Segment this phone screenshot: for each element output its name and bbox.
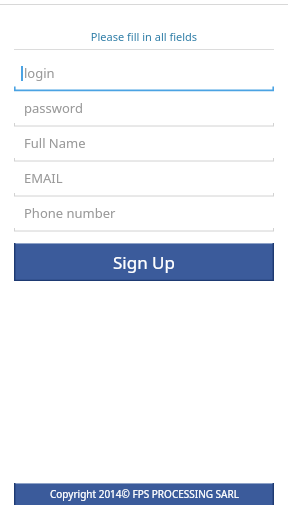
button[interactable]: password bbox=[14, 93, 274, 127]
staticText: password bbox=[24, 99, 83, 117]
staticText: Sign Up bbox=[113, 251, 175, 274]
button[interactable]: login bbox=[14, 58, 274, 92]
staticText: Copyright 2014© FPS PROCESSING SARL bbox=[50, 487, 239, 501]
staticText: login bbox=[24, 64, 55, 82]
button[interactable]: Copyright 2014© FPS PROCESSING SARL bbox=[14, 483, 274, 505]
staticText: EMAIL bbox=[24, 169, 63, 187]
staticText: Full Name bbox=[24, 134, 86, 152]
staticText: Phone number bbox=[24, 204, 116, 222]
button[interactable]: Sign Up bbox=[14, 243, 274, 281]
button[interactable]: Full Name bbox=[14, 128, 274, 162]
button[interactable]: Phone number bbox=[14, 198, 274, 232]
button[interactable]: EMAIL bbox=[14, 163, 274, 197]
staticText: Please fill in all fields bbox=[0, 29, 288, 44]
